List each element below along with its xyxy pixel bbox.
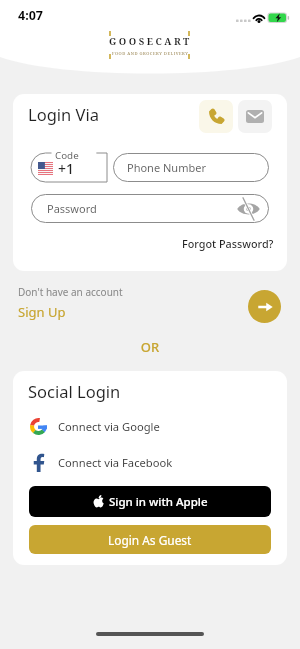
button[interactable]: Connect via Facebook	[30, 450, 230, 474]
staticText: Connect via Facebook	[58, 455, 173, 470]
staticText: Connect via Google	[58, 419, 160, 434]
staticText: Forgot Password?	[182, 236, 274, 251]
staticText: Code	[55, 149, 79, 162]
button[interactable]: Login via email	[238, 100, 272, 133]
staticText: Password	[47, 201, 97, 216]
staticText: Social Login	[28, 380, 121, 402]
staticText: Phone Number	[127, 160, 206, 175]
button[interactable]: Login As Guest	[29, 525, 271, 554]
staticText: FOOD AND GROCERY DELIVERY	[112, 51, 189, 57]
button[interactable]: Code	[31, 149, 107, 182]
staticText: Don't have an account	[18, 285, 123, 299]
staticText: Login Via	[28, 103, 99, 125]
button[interactable]: Forgot Password?	[143, 232, 274, 254]
button[interactable]: Sign in with Apple	[29, 486, 271, 517]
staticText: GOOSECART	[109, 35, 192, 48]
button[interactable]: Login via phone	[199, 100, 233, 133]
button[interactable]: Toggle password visibility	[235, 196, 261, 222]
staticText: OR	[0, 338, 300, 356]
button[interactable]: Continue	[248, 290, 281, 323]
button[interactable]: Password	[31, 194, 269, 223]
button[interactable]: Connect via Google	[30, 414, 230, 438]
button[interactable]: Phone Number	[113, 153, 269, 182]
staticText: Sign Up	[18, 303, 66, 321]
staticText: Sign in with Apple	[109, 494, 208, 510]
button[interactable]: Don't have an account	[18, 285, 123, 321]
staticText: 4:07	[18, 7, 43, 24]
staticText: +1	[58, 159, 75, 178]
staticText: Login As Guest	[108, 532, 192, 548]
